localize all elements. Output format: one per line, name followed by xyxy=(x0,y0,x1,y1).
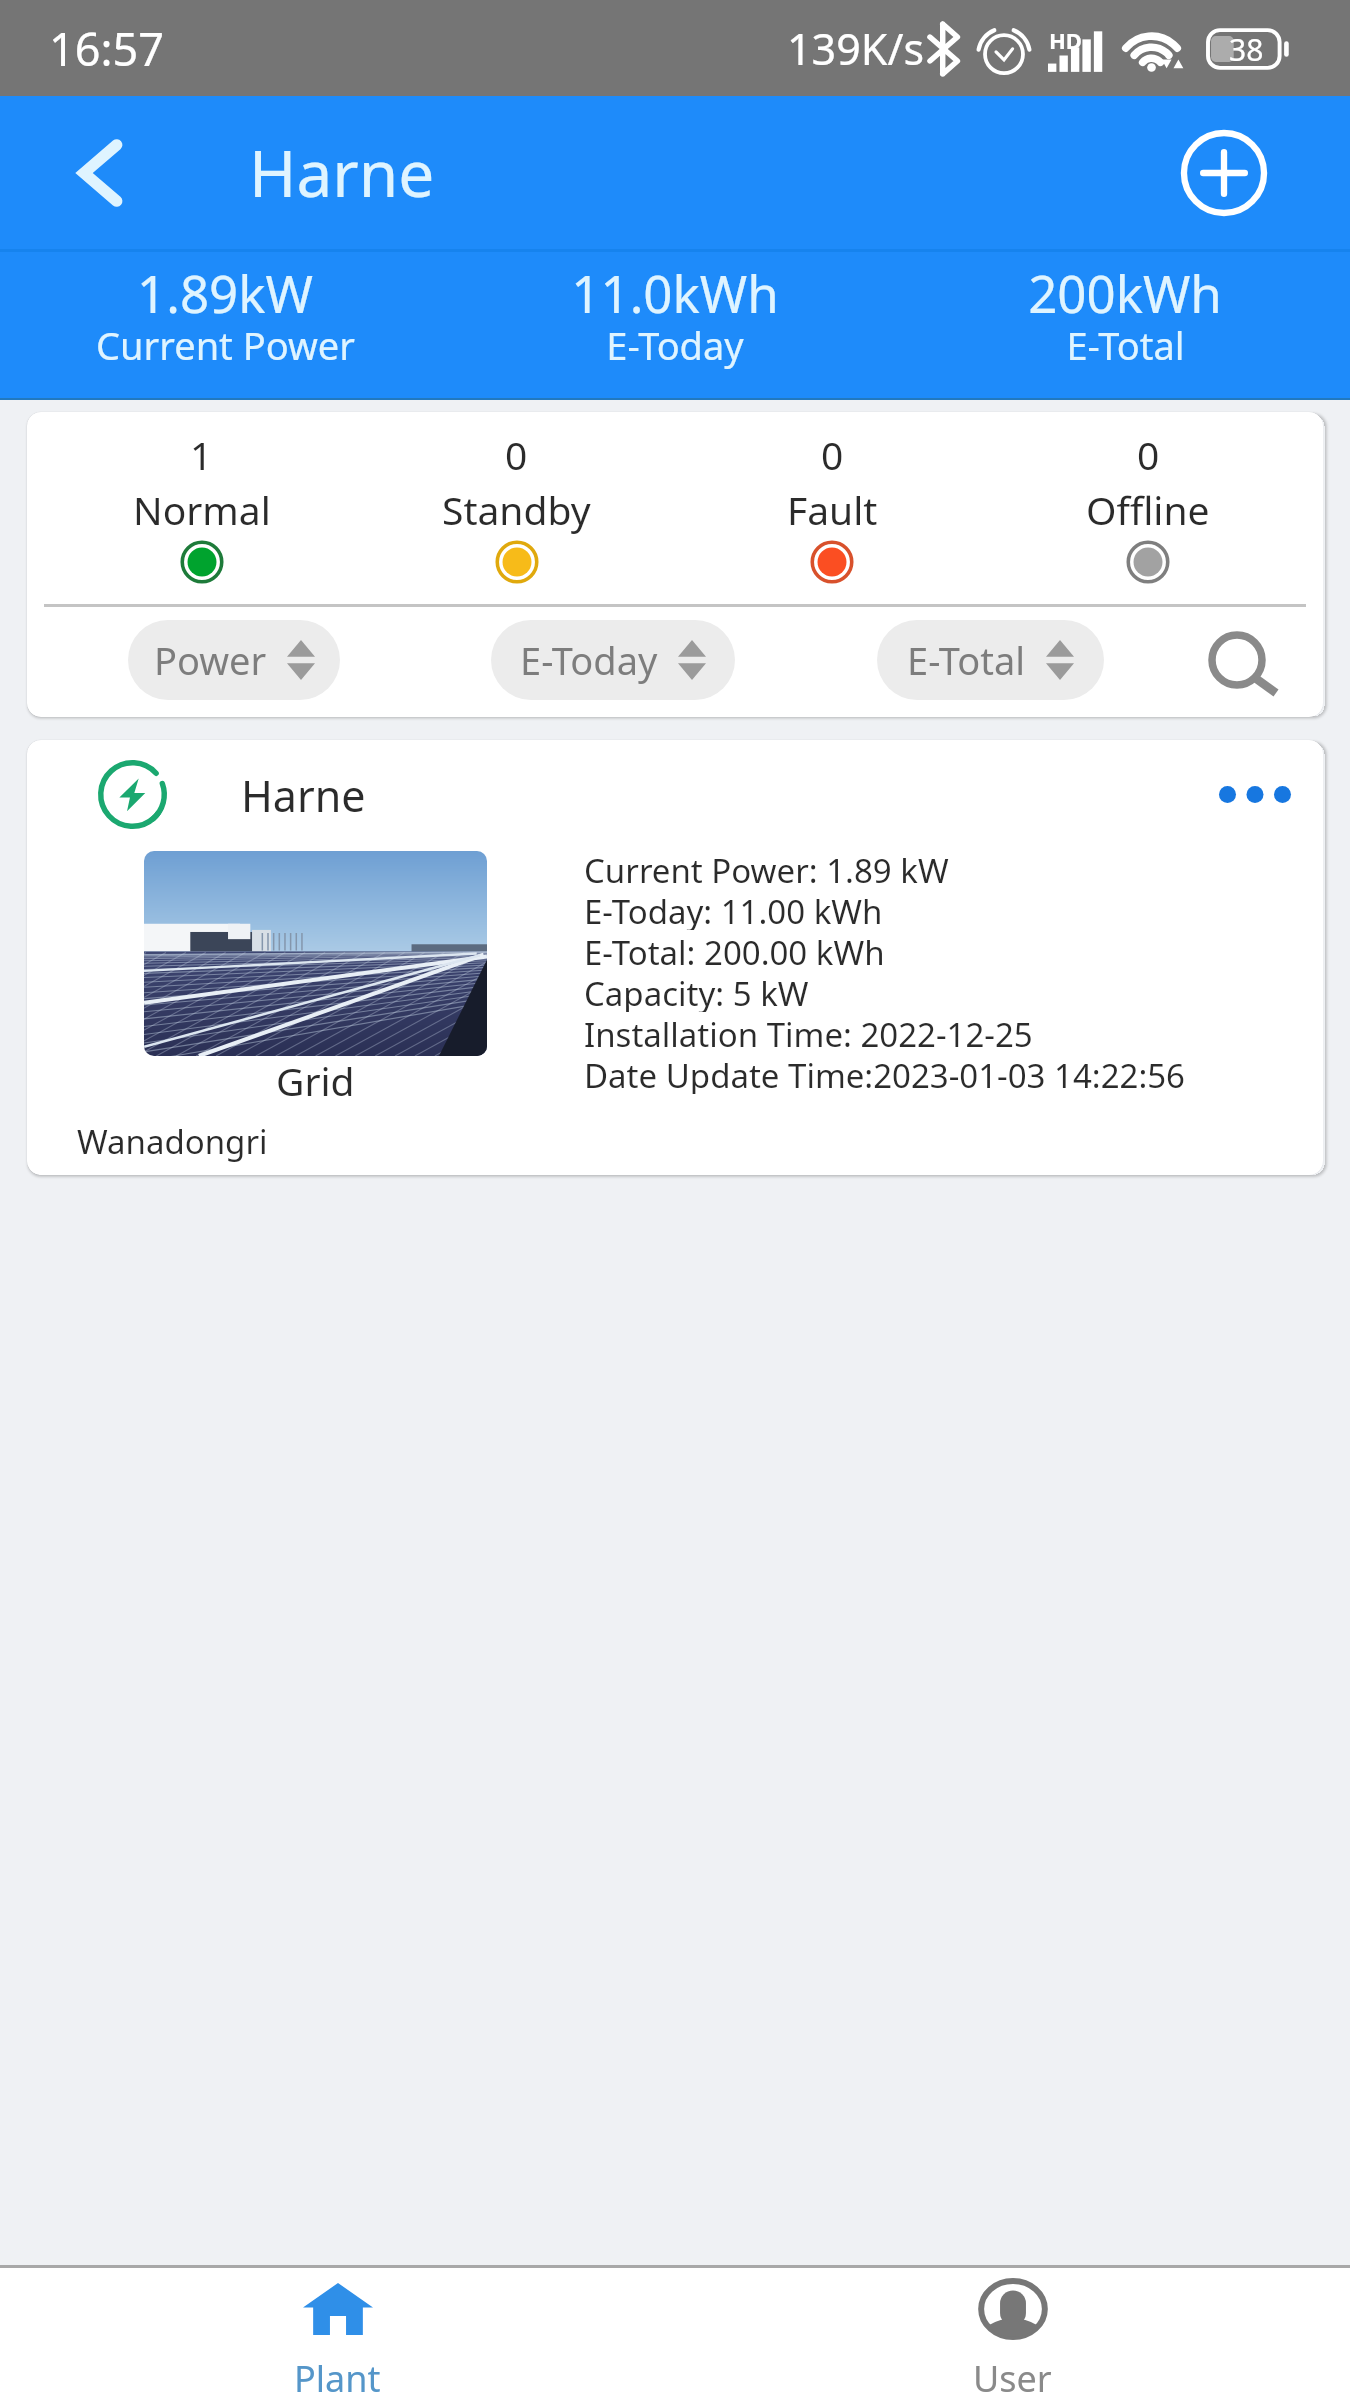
button[interactable]: 0 xyxy=(359,428,674,583)
staticText: E-Today: 11.00 kWh xyxy=(584,889,883,930)
staticText: Capacity: 5 kW xyxy=(584,971,809,1012)
staticText: E-Today xyxy=(606,319,744,371)
staticText: HD xyxy=(1049,25,1082,55)
button[interactable]: Back xyxy=(62,135,138,211)
staticText: Wanadongri xyxy=(77,1119,268,1164)
staticText: User xyxy=(973,2354,1052,2400)
staticText: 139K/s xyxy=(787,19,924,78)
staticText: 0 xyxy=(821,428,844,481)
staticText: Current Power xyxy=(96,319,355,371)
button[interactable]: 1 xyxy=(44,428,359,583)
staticText: E-Today xyxy=(520,634,658,686)
button[interactable]: E-Today xyxy=(491,620,735,700)
staticText: E-Total xyxy=(907,634,1026,686)
button[interactable]: Harne xyxy=(27,740,1323,1175)
button[interactable]: Plant xyxy=(0,2268,675,2400)
staticText: Grid xyxy=(276,1054,355,1104)
button[interactable]: E-Total xyxy=(877,620,1104,700)
button[interactable]: More options xyxy=(1187,758,1323,830)
staticText: 1.89kW xyxy=(137,258,313,327)
staticText: Installation Time: 2022-12-25 xyxy=(584,1012,1033,1053)
staticText: 16:57 xyxy=(49,18,165,79)
staticText: E-Total: 200.00 kWh xyxy=(584,930,885,971)
staticText: 200kWh xyxy=(1028,258,1222,327)
button[interactable]: Power xyxy=(128,620,340,700)
staticText: Harne xyxy=(241,766,366,825)
button[interactable]: User xyxy=(675,2268,1350,2400)
staticText: Plant xyxy=(294,2354,381,2400)
staticText: Date Update Time:2023-01-03 14:22:56 xyxy=(584,1053,1185,1094)
staticText: Standby xyxy=(442,483,591,536)
staticText: E-Total xyxy=(1066,319,1185,371)
staticText: 0 xyxy=(1137,428,1160,481)
staticText: Fault xyxy=(787,483,878,536)
button[interactable]: 0 xyxy=(674,428,990,583)
staticText: 1 xyxy=(190,428,213,481)
staticText: 0 xyxy=(505,428,528,481)
staticText: 11.0kWh xyxy=(571,258,779,327)
staticText: Power xyxy=(154,634,267,686)
staticText: Current Power: 1.89 kW xyxy=(584,848,949,889)
staticText: Offline xyxy=(1086,483,1210,536)
button[interactable]: Add xyxy=(1180,129,1268,217)
staticText: Normal xyxy=(133,483,271,536)
button[interactable]: 0 xyxy=(990,428,1306,583)
staticText: Harne xyxy=(249,129,435,216)
staticText: 38 xyxy=(1229,29,1264,70)
button[interactable]: Search xyxy=(1195,618,1295,717)
